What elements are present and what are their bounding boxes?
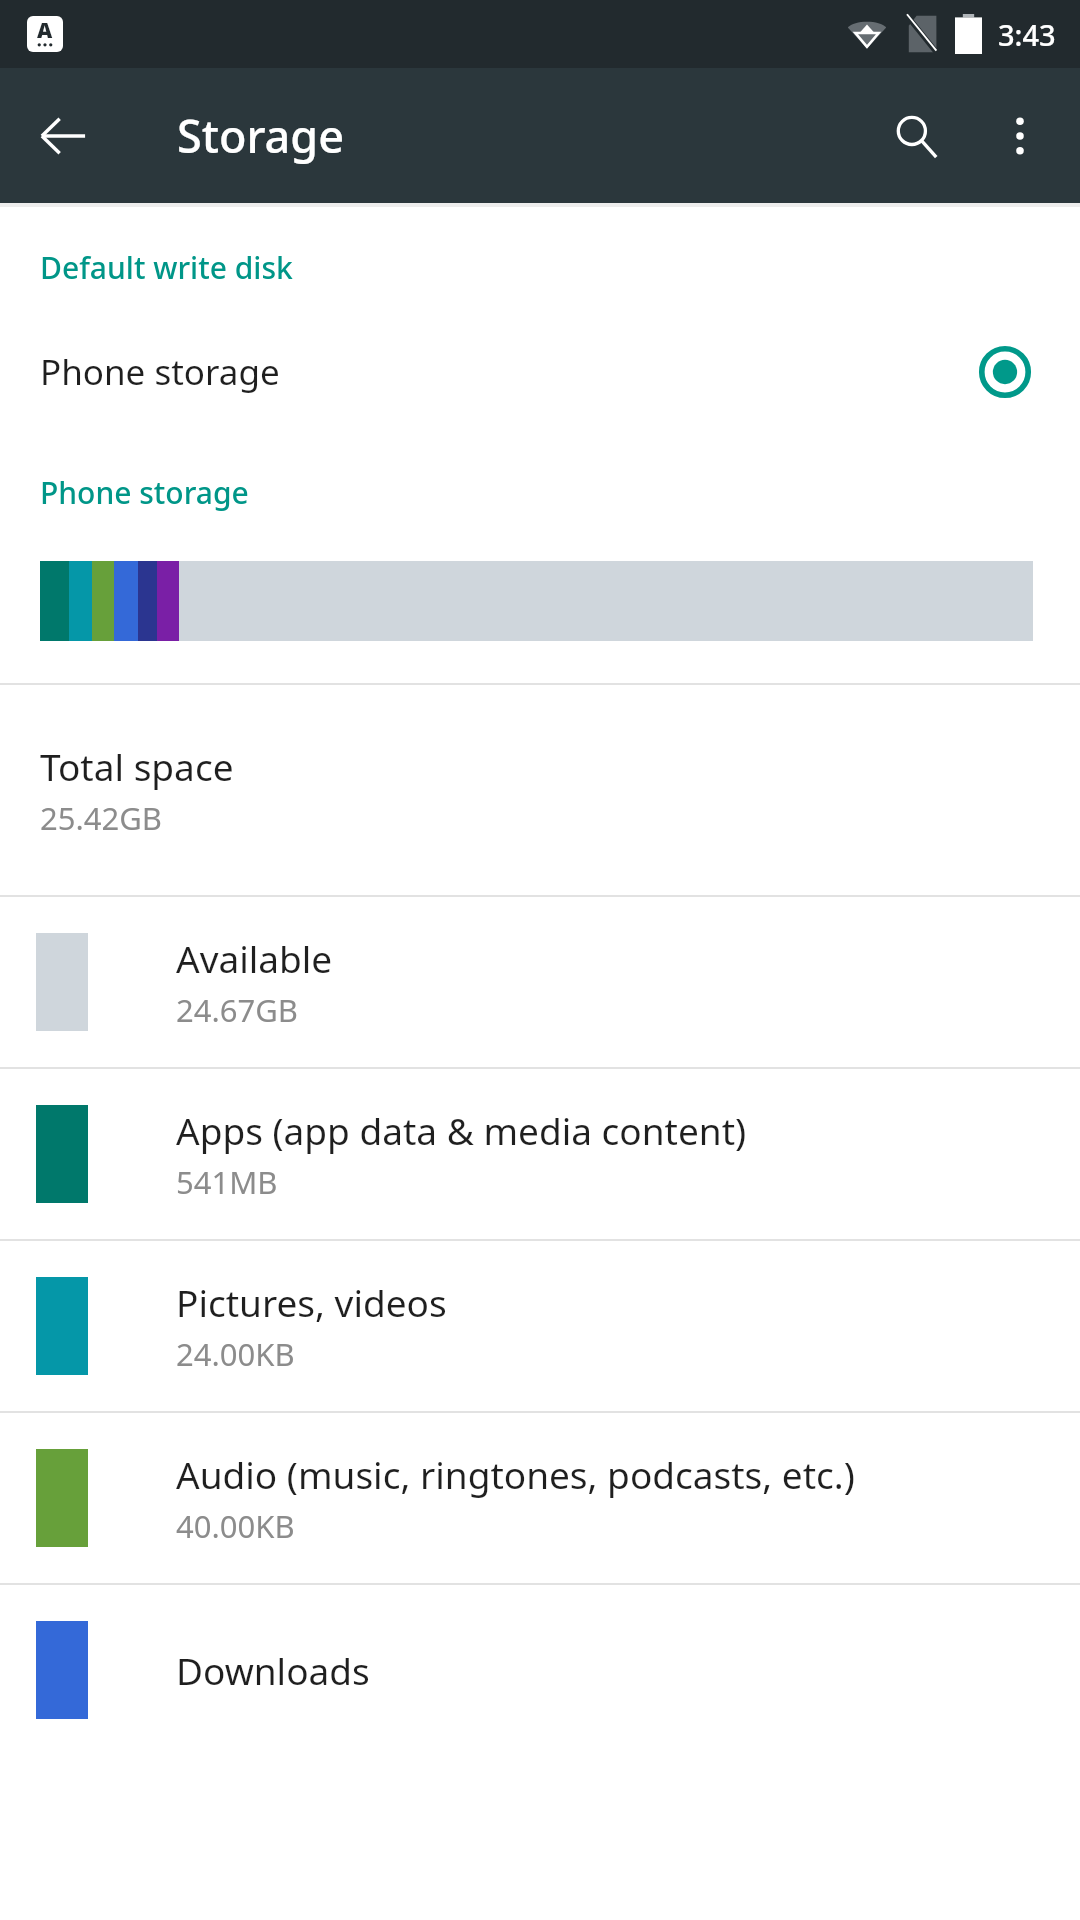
button[interactable]: Available: [0, 897, 1080, 1067]
button[interactable]: Apps (app data & media content): [0, 1069, 1080, 1239]
staticText: 541MB: [176, 1161, 278, 1203]
staticText: A: [37, 16, 53, 45]
staticText: Total space: [40, 741, 234, 791]
staticText: 24.00KB: [176, 1333, 295, 1375]
staticText: Storage: [177, 105, 345, 166]
button[interactable]: More options: [968, 84, 1072, 188]
staticText: Phone storage: [40, 472, 249, 513]
staticText: Apps (app data & media content): [176, 1105, 747, 1155]
button[interactable]: Pictures, videos: [0, 1241, 1080, 1411]
staticText: 25.42GB: [40, 797, 162, 839]
button[interactable]: Total space: [0, 685, 1080, 895]
staticText: Available: [176, 933, 333, 983]
staticText: 24.67GB: [176, 989, 298, 1031]
button[interactable]: Downloads: [0, 1585, 1080, 1755]
button[interactable]: Search: [864, 84, 968, 188]
other: Wi-Fi: [847, 18, 887, 50]
button[interactable]: Navigate up: [18, 91, 108, 181]
other: Battery: [955, 14, 982, 54]
staticText: Downloads: [176, 1645, 370, 1695]
staticText: 40.00KB: [176, 1505, 295, 1547]
button[interactable]: Phone storage: [0, 328, 1080, 416]
staticText: Phone storage: [40, 348, 280, 396]
other: No SIM: [907, 15, 937, 53]
staticText: Audio (music, ringtones, podcasts, etc.): [176, 1449, 855, 1499]
staticText: 3:43: [998, 15, 1056, 54]
staticText: Default write disk: [40, 247, 293, 288]
button[interactable]: Audio (music, ringtones, podcasts, etc.): [0, 1413, 1080, 1583]
staticText: Pictures, videos: [176, 1277, 447, 1327]
